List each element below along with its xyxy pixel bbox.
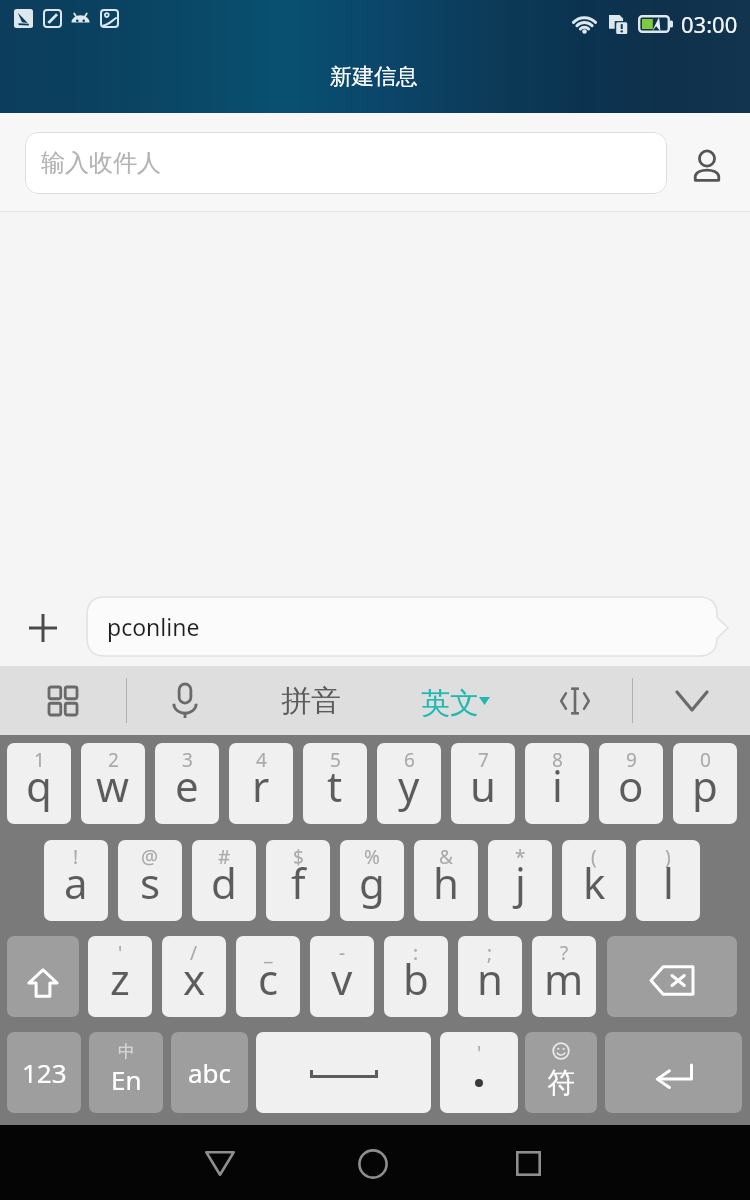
button[interactable]: ( (562, 840, 626, 921)
staticText: # (218, 844, 231, 870)
staticText: $ (293, 844, 304, 870)
button[interactable]: Pick contact (675, 113, 739, 212)
staticText: w (96, 757, 130, 814)
button[interactable]: ? (532, 936, 596, 1017)
button[interactable]: _ (236, 936, 300, 1017)
button[interactable]: 8 (525, 743, 589, 824)
staticText: 5 (330, 747, 341, 773)
button[interactable]: ! (44, 840, 108, 921)
staticText: % (364, 844, 380, 870)
staticText: @ (141, 844, 159, 870)
button[interactable]: Keyboard layouts (0, 666, 126, 735)
staticText: 拼音 (281, 682, 341, 720)
button[interactable]: Back (168, 1125, 272, 1200)
staticText: pconline (107, 611, 200, 642)
staticText: _ (264, 940, 273, 966)
staticText: h (433, 854, 459, 911)
staticText: 03:00 (681, 9, 738, 39)
staticText: b (403, 950, 429, 1007)
button[interactable]: ' (88, 936, 152, 1017)
button[interactable]: Recent apps (476, 1125, 580, 1200)
button[interactable]: Home (321, 1125, 425, 1200)
staticText: d (211, 854, 237, 911)
button[interactable]: 7 (451, 743, 515, 824)
button[interactable]: 英文 (379, 666, 518, 735)
staticText: En (111, 1062, 142, 1097)
button[interactable]: 6 (377, 743, 441, 824)
staticText: p (692, 757, 718, 814)
button[interactable]: Voice input (127, 666, 242, 735)
staticText: 英文 (421, 685, 479, 722)
staticText: e (175, 757, 199, 814)
staticText: g (359, 854, 385, 911)
button[interactable]: abc (171, 1032, 248, 1113)
staticText: a (64, 854, 88, 911)
button[interactable]: Backspace (607, 936, 737, 1017)
button[interactable]: 2 (81, 743, 145, 824)
button[interactable]: 0 (673, 743, 737, 824)
button[interactable]: ) (636, 840, 700, 921)
staticText: : (413, 940, 419, 966)
button[interactable]: & (414, 840, 478, 921)
button[interactable]: Shift (7, 936, 79, 1017)
staticText: 新建信息 (330, 63, 418, 91)
staticText: ' (118, 940, 123, 966)
staticText: 输入收件人 (41, 148, 161, 178)
button[interactable]: ; (458, 936, 522, 1017)
staticText: l (663, 854, 674, 911)
staticText: ! (73, 844, 79, 870)
staticText: r (252, 757, 270, 814)
button[interactable]: 输入收件人 (25, 132, 667, 194)
staticText: 符 (547, 1065, 575, 1100)
staticText: ) (665, 844, 671, 870)
staticText: o (618, 757, 644, 814)
button[interactable]: 1 (7, 743, 71, 824)
staticText: ( (591, 844, 597, 870)
staticText: 3 (182, 747, 193, 773)
button[interactable]: @ (118, 840, 182, 921)
staticText: 0 (700, 747, 711, 773)
button[interactable]: 拼音 (242, 666, 379, 735)
staticText: k (583, 854, 606, 911)
button[interactable]: 9 (599, 743, 663, 824)
staticText: abc (188, 1055, 232, 1090)
staticText: 9 (626, 747, 637, 773)
button[interactable]: Enter (605, 1032, 742, 1113)
button[interactable]: Move cursor (518, 666, 632, 735)
staticText: & (439, 844, 453, 870)
staticText: m (544, 950, 584, 1007)
button[interactable]: 3 (155, 743, 219, 824)
staticText: 7 (478, 747, 489, 773)
button[interactable]: Symbols (525, 1032, 597, 1113)
staticText: j (515, 854, 526, 911)
button[interactable]: % (340, 840, 404, 921)
staticText: s (140, 854, 161, 911)
staticText: ; (487, 940, 493, 966)
button[interactable]: 4 (229, 743, 293, 824)
button[interactable]: Numbers (7, 1032, 81, 1113)
staticText: c (258, 950, 279, 1007)
button[interactable]: / (162, 936, 226, 1017)
staticText: 中 (118, 1041, 135, 1062)
staticText: f (291, 854, 306, 911)
staticText: 8 (552, 747, 563, 773)
button[interactable]: Comma (440, 1032, 518, 1113)
button[interactable]: : (384, 936, 448, 1017)
staticText: 6 (404, 747, 415, 773)
button[interactable]: # (192, 840, 256, 921)
staticText: v (331, 950, 353, 1007)
button[interactable]: Switch language (89, 1032, 163, 1113)
button[interactable]: Space (256, 1032, 431, 1113)
staticText: 123 (22, 1055, 67, 1090)
staticText: ' (477, 1040, 482, 1066)
staticText: ? (560, 940, 569, 966)
button[interactable]: Add attachment (16, 601, 70, 655)
button[interactable]: 5 (303, 743, 367, 824)
button[interactable]: * (488, 840, 552, 921)
staticText: t (327, 757, 343, 814)
button[interactable]: pconline (87, 597, 728, 656)
button[interactable]: - (310, 936, 374, 1017)
button[interactable]: $ (266, 840, 330, 921)
staticText: 4 (256, 747, 267, 773)
button[interactable]: Hide keyboard (633, 666, 750, 735)
